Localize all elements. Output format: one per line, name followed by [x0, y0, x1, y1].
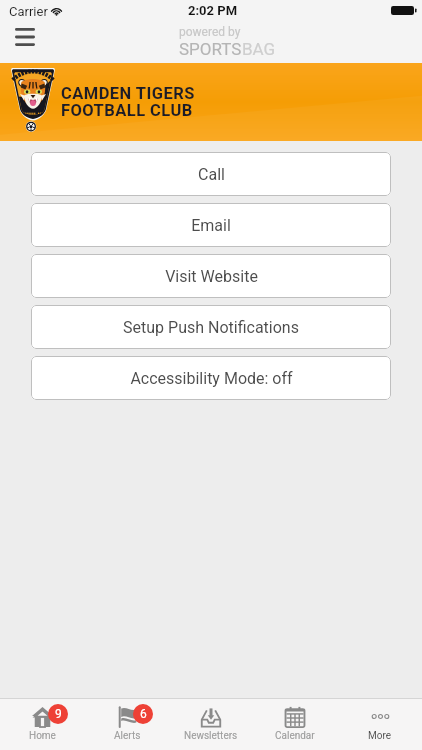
staticText: Visit Website	[165, 267, 258, 286]
staticText: 2:02 PM	[188, 3, 238, 18]
staticText: Call	[198, 165, 225, 184]
staticText: Newsletters	[184, 730, 238, 742]
button[interactable]: Calendar	[253, 699, 337, 750]
staticText: Carrier	[9, 4, 48, 19]
button[interactable]: Call	[31, 152, 391, 196]
button[interactable]: 6	[85, 699, 169, 750]
button[interactable]: 9	[0, 699, 84, 750]
staticText: Calendar	[275, 730, 315, 742]
staticText: CAMDEN TIGERS FOOTBALL CLUB	[61, 84, 195, 120]
staticText: Setup Push Notifications	[123, 318, 299, 337]
button[interactable]: Visit Website	[31, 254, 391, 298]
staticText: Alerts	[114, 730, 141, 742]
staticText: More	[368, 730, 392, 742]
staticText: BAG	[242, 39, 276, 59]
staticText: Home	[29, 730, 56, 742]
staticText: Email	[191, 216, 231, 235]
button[interactable]: Setup Push Notifications	[31, 305, 391, 349]
staticText: 6	[140, 707, 147, 721]
button[interactable]: Open navigation menu	[5, 18, 45, 55]
button[interactable]: More	[338, 699, 422, 750]
staticText: SPORTS	[179, 39, 242, 59]
staticText: Accessibility Mode: off	[130, 369, 293, 388]
staticText: 9	[55, 707, 62, 721]
button[interactable]: Newsletters	[169, 699, 253, 750]
staticText: powered by	[179, 25, 241, 39]
button[interactable]: Accessibility Mode: off	[31, 356, 391, 400]
button[interactable]: Email	[31, 203, 391, 247]
